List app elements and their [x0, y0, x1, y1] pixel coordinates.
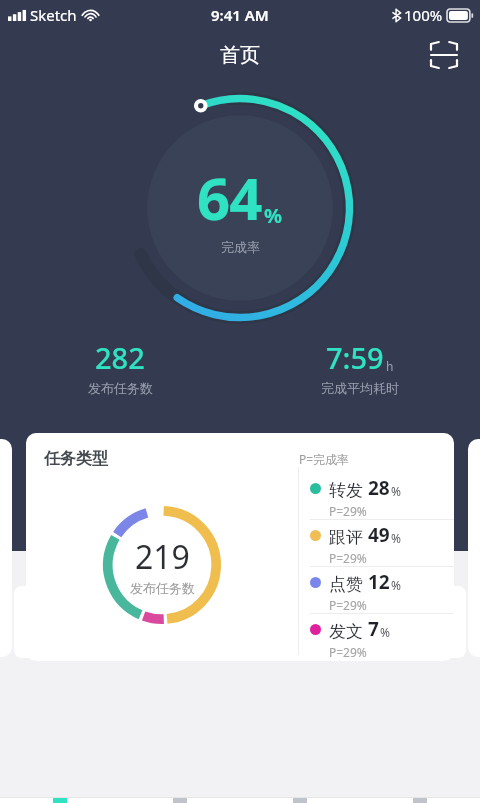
- staticText: %: [380, 624, 390, 640]
- button[interactable]: 转发: [298, 473, 454, 520]
- staticText: 完成平均耗时: [321, 380, 399, 396]
- button[interactable]: [218, 569, 242, 574]
- staticText: 完成率: [221, 239, 260, 255]
- staticText: P=29%: [329, 644, 367, 660]
- staticText: 首页: [220, 43, 260, 68]
- button[interactable]: 282: [0, 338, 240, 396]
- button[interactable]: 首页: [0, 798, 120, 803]
- staticText: %: [391, 483, 401, 499]
- staticText: %: [391, 577, 401, 593]
- staticText: 61: [403, 600, 429, 630]
- staticText: 219: [135, 535, 190, 579]
- button[interactable]: 发文: [298, 614, 454, 661]
- button[interactable]: 任务: [120, 798, 240, 803]
- staticText: 9:41 AM: [211, 5, 269, 25]
- button[interactable]: 点赞: [298, 567, 454, 614]
- staticText: Sketch: [30, 5, 77, 25]
- button[interactable]: Scan QR code: [424, 35, 464, 75]
- staticText: 7:59: [326, 338, 384, 377]
- staticText: 282: [95, 338, 145, 377]
- staticText: 100%: [404, 5, 443, 25]
- staticText: P=29%: [329, 503, 367, 519]
- staticText: 完成进度: [54, 605, 122, 626]
- staticText: P=29%: [329, 597, 367, 613]
- staticText: P=完成率: [299, 451, 350, 467]
- staticText: 任务类型: [44, 449, 108, 469]
- staticText: 转发: [329, 480, 363, 501]
- button[interactable]: 我的: [360, 798, 480, 803]
- staticText: 28: [368, 475, 390, 501]
- staticText: h: [386, 358, 394, 374]
- staticText: 发布任务数: [88, 380, 153, 396]
- button[interactable]: 完成进度: [14, 586, 466, 658]
- button[interactable]: 跟评: [298, 520, 454, 567]
- staticText: 点赞: [329, 574, 363, 595]
- staticText: 跟评: [329, 527, 363, 548]
- staticText: 12: [368, 569, 390, 595]
- staticText: 49: [368, 522, 390, 548]
- staticText: /50: [429, 609, 452, 629]
- staticText: 发文: [329, 621, 363, 642]
- staticText: 发布任务数: [130, 580, 195, 596]
- button[interactable]: 7:59: [240, 338, 480, 396]
- button[interactable]: 消息: [240, 798, 360, 803]
- staticText: %: [264, 202, 283, 229]
- button[interactable]: 任务类型: [26, 433, 454, 661]
- staticText: %: [391, 530, 401, 546]
- staticText: 7: [368, 616, 379, 642]
- staticText: 64: [197, 158, 262, 237]
- staticText: P=29%: [329, 550, 367, 566]
